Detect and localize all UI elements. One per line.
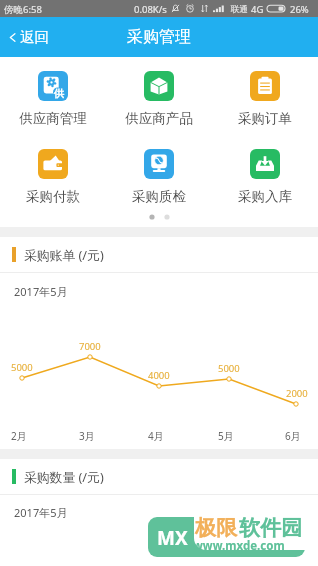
- button[interactable]: 供应商产品: [106, 71, 212, 127]
- staticText: 极限: [195, 515, 237, 541]
- staticText: 采购入库: [238, 188, 292, 205]
- staticText: 4月: [148, 429, 164, 443]
- staticText: 傍晚6:58: [4, 3, 42, 16]
- button[interactable]: 采购质检: [106, 149, 212, 205]
- button[interactable]: 返回: [0, 20, 59, 54]
- staticText: 采购付款: [26, 188, 80, 205]
- button[interactable]: 采购付款: [0, 149, 106, 205]
- staticText: 软件园: [239, 515, 302, 541]
- staticText: www.mxde.com: [193, 538, 285, 554]
- button[interactable]: 供: [0, 71, 106, 127]
- staticText: 4G: [251, 3, 264, 16]
- staticText: 采购账单 (/元): [24, 246, 104, 263]
- staticText: 7000: [79, 340, 101, 353]
- staticText: 5000: [218, 362, 240, 375]
- staticText: MX: [157, 525, 188, 551]
- staticText: 4000: [148, 369, 170, 382]
- staticText: 采购管理: [127, 27, 191, 47]
- staticText: 供应商产品: [125, 110, 193, 127]
- staticText: 26%: [290, 3, 309, 16]
- staticText: 2017年5月: [14, 284, 68, 299]
- staticText: 供应商管理: [19, 110, 87, 127]
- staticText: 5月: [218, 429, 234, 443]
- staticText: 3月: [79, 429, 95, 443]
- staticText: 采购订单: [238, 110, 292, 127]
- staticText: 2000: [286, 387, 308, 400]
- staticText: 6月: [285, 429, 301, 443]
- button[interactable]: 采购入库: [212, 149, 318, 205]
- staticText: 供: [54, 87, 64, 100]
- staticText: 0.08K/s: [134, 3, 167, 16]
- staticText: 2月: [11, 429, 27, 443]
- staticText: 返回: [20, 28, 49, 46]
- button[interactable]: 采购订单: [212, 71, 318, 127]
- staticText: 2017年5月: [14, 505, 68, 520]
- staticText: 采购质检: [132, 188, 186, 205]
- staticText: 5000: [11, 361, 33, 374]
- staticText: 联通: [231, 4, 248, 15]
- staticText: 采购数量 (/元): [24, 468, 104, 485]
